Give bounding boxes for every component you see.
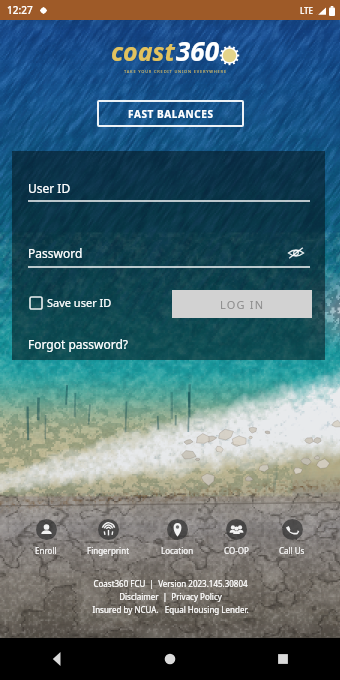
staticText: TAKE YOUR CREDIT UNION EVERYWHERE (124, 69, 227, 74)
staticText: Call Us (279, 545, 305, 556)
button[interactable]: Forgot password? (28, 336, 129, 352)
staticText: Enroll (35, 545, 57, 556)
other: Back (50, 652, 64, 666)
staticText: 360 (176, 33, 219, 68)
button[interactable]: Enroll (32, 517, 60, 558)
button[interactable]: Location (158, 517, 197, 558)
staticText: LTE (300, 5, 314, 16)
staticText: User ID (28, 180, 71, 196)
staticText: FAST BALANCES (128, 107, 214, 121)
button[interactable]: FAST BALANCES (97, 100, 244, 127)
staticText: Insured by NCUA. Equal Housing Lender. (92, 604, 249, 615)
staticText: Location (161, 545, 194, 556)
staticText: CO-OP (224, 545, 249, 556)
staticText: Coast360 FCU | Version 2023.145.30804 (93, 578, 248, 589)
other: Recents (276, 652, 290, 666)
button[interactable]: Show password (286, 243, 306, 263)
staticText: Forgot password? (28, 336, 129, 352)
button[interactable]: Call Us (276, 517, 308, 558)
button[interactable]: CO-OP (221, 517, 252, 558)
staticText: coast (111, 34, 175, 68)
button[interactable]: Save user ID (30, 295, 112, 310)
button[interactable]: Disclaimer | Privacy Policy (119, 591, 222, 602)
staticText: Fingerprint (87, 545, 130, 556)
staticText: Save user ID (47, 295, 112, 310)
other: Home (163, 652, 177, 666)
staticText: Password (28, 245, 83, 261)
button[interactable]: Fingerprint (84, 517, 133, 558)
staticText: LOG IN (220, 297, 265, 312)
button[interactable]: LOG IN (172, 290, 312, 318)
staticText: 12:27 (7, 3, 33, 17)
